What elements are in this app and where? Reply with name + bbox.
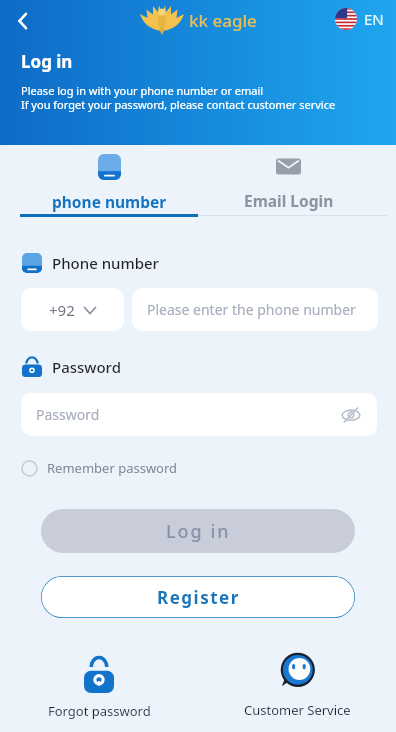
staticText: Please log in with your phone number or … — [21, 83, 264, 98]
button[interactable]: Forgot password — [0, 656, 198, 720]
button[interactable]: Please enter the phone number — [132, 288, 378, 331]
staticText: Register — [157, 586, 240, 609]
staticText: Customer Service — [244, 701, 351, 719]
staticText: +92 — [49, 300, 75, 320]
button[interactable]: Password — [21, 393, 377, 436]
button[interactable]: phone number — [20, 154, 199, 212]
button[interactable]: Log in — [41, 509, 355, 553]
button[interactable]: Customer Service — [198, 656, 396, 719]
staticText: phone number — [52, 191, 167, 212]
button[interactable]: Register — [41, 576, 355, 618]
button[interactable]: Remember password — [21, 459, 178, 477]
staticText: kk eagle — [189, 9, 257, 32]
button[interactable]: Email Login — [199, 154, 378, 211]
staticText: Password — [36, 405, 100, 424]
staticText: Forgot password — [48, 702, 151, 720]
button[interactable]: EN — [335, 8, 384, 30]
staticText: Email Login — [244, 190, 334, 211]
staticText: If you forget your password, please cont… — [21, 97, 336, 112]
staticText: Please enter the phone number — [147, 300, 356, 319]
button[interactable]: +92 — [21, 288, 124, 331]
button[interactable] — [8, 6, 38, 36]
staticText: Log in — [166, 519, 231, 544]
staticText: Password — [52, 357, 121, 377]
staticText: Remember password — [47, 459, 178, 477]
staticText: Log in — [21, 50, 73, 73]
staticText: Phone number — [52, 253, 159, 273]
staticText: EN — [364, 9, 384, 29]
